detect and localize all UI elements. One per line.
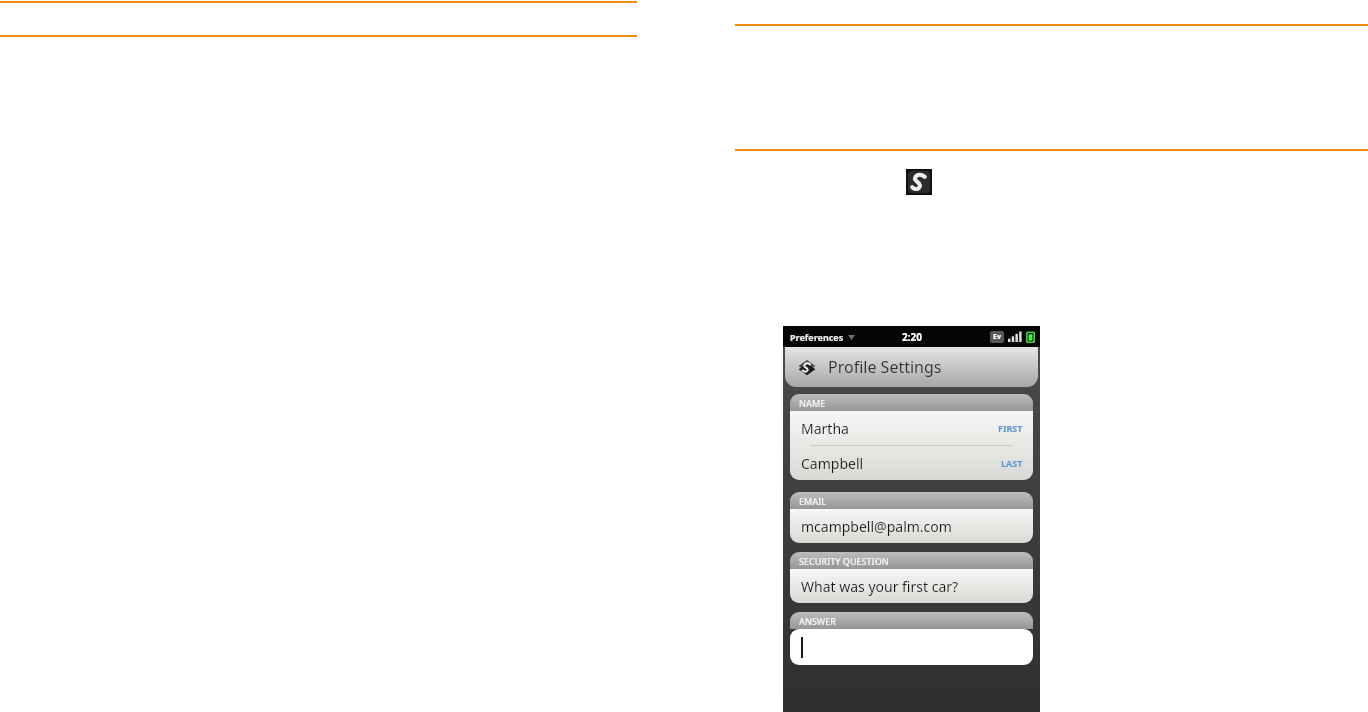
staticText: 2:20 [902, 330, 922, 344]
button[interactable]: EMAIL [790, 492, 1033, 509]
button[interactable]: Profile application icon [906, 169, 932, 195]
staticText: Preferences [790, 331, 844, 343]
staticText: FIRST [998, 422, 1023, 434]
button[interactable]: Preferences [790, 331, 855, 343]
staticText: Campbell [801, 454, 864, 473]
button[interactable]: Martha [790, 411, 1033, 445]
staticText: Ev [993, 332, 1001, 342]
staticText: Profile Settings [828, 356, 942, 378]
staticText: What was your first car? [801, 577, 959, 596]
button[interactable]: SECURITY QUESTION [790, 552, 1033, 569]
staticText: LAST [1001, 457, 1023, 469]
button[interactable]: Campbell [790, 446, 1033, 480]
button[interactable]: NAME [790, 394, 1033, 411]
staticText: mcampbell@palm.com [801, 517, 952, 536]
staticText: ANSWER [799, 615, 836, 627]
button[interactable] [790, 629, 1033, 665]
staticText: EMAIL [799, 495, 827, 507]
staticText: Martha [801, 419, 849, 438]
button[interactable]: mcampbell@palm.com [790, 509, 1033, 543]
button[interactable]: ANSWER [790, 612, 1033, 629]
staticText: NAME [799, 397, 826, 409]
button[interactable]: Profile Settings [785, 347, 1038, 387]
staticText: SECURITY QUESTION [799, 555, 889, 567]
button[interactable]: What was your first car? [790, 569, 1033, 603]
